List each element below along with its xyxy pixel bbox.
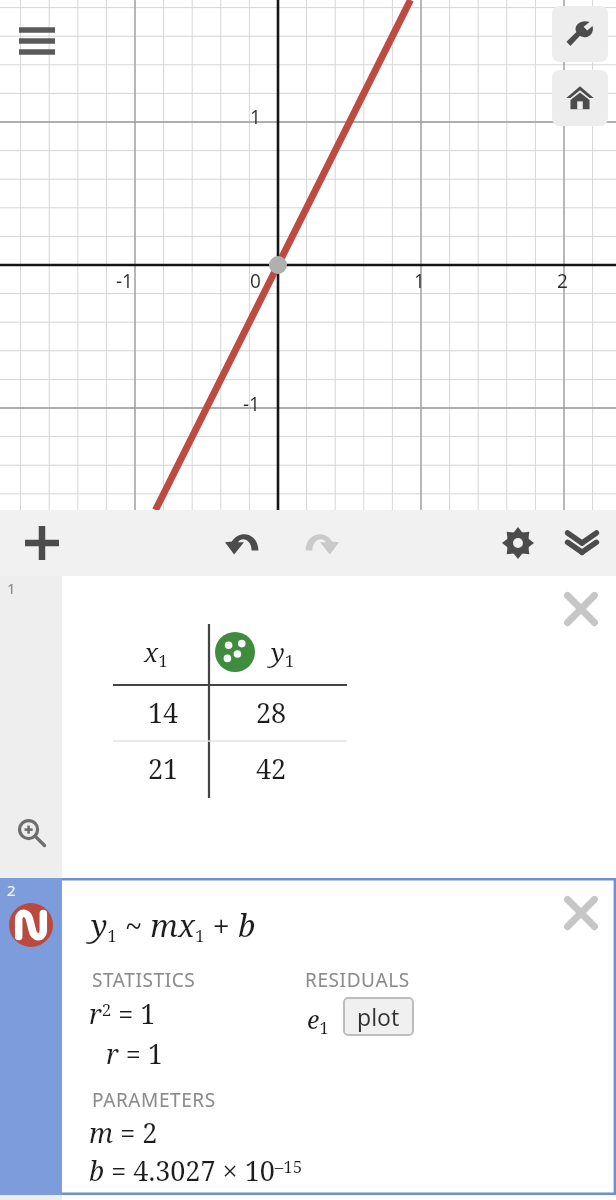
- button[interactable]: plot: [343, 997, 414, 1036]
- staticText: b = 4.3027 × 10–15: [89, 1152, 303, 1189]
- staticText: 42: [256, 750, 287, 787]
- staticText: 28: [256, 694, 287, 731]
- button[interactable]: Expression 2: [0, 878, 62, 1195]
- staticText: x1: [144, 634, 168, 672]
- staticText: plot: [357, 1001, 400, 1032]
- button[interactable]: Table style: [215, 632, 255, 672]
- button[interactable]: Graph settings: [552, 6, 608, 62]
- staticText: 21: [148, 750, 179, 787]
- staticText: y1 ~ mx1 + b: [91, 904, 256, 947]
- staticText: 14: [148, 694, 179, 731]
- staticText: y1: [271, 634, 295, 672]
- staticText: 1: [7, 578, 16, 598]
- staticText: RESIDUALS: [305, 967, 410, 993]
- staticText: r = 1: [106, 1035, 163, 1072]
- staticText: m = 2: [89, 1114, 158, 1151]
- button[interactable]: Menu: [12, 14, 62, 64]
- button[interactable]: Delete expression: [554, 582, 608, 636]
- staticText: 1: [414, 268, 425, 294]
- button[interactable]: Add expression: [14, 515, 70, 571]
- staticText: STATISTICS: [92, 967, 196, 993]
- button[interactable]: Settings: [492, 517, 544, 569]
- staticText: r2 = 1: [89, 995, 156, 1032]
- staticText: e1: [307, 1002, 329, 1039]
- staticText: 1: [250, 104, 261, 130]
- staticText: -1: [243, 391, 260, 417]
- button[interactable]: Collapse list: [556, 517, 608, 569]
- button[interactable]: Expression 1: [0, 576, 62, 878]
- button[interactable]: Undo: [218, 517, 270, 569]
- staticText: -1: [116, 268, 133, 294]
- staticText: 2: [557, 268, 568, 294]
- button[interactable]: Redo: [294, 517, 346, 569]
- staticText: 2: [7, 880, 16, 900]
- button[interactable]: Delete expression: [554, 886, 608, 940]
- staticText: PARAMETERS: [92, 1087, 216, 1113]
- staticText: 0: [250, 268, 261, 294]
- button[interactable]: Home: [552, 70, 608, 126]
